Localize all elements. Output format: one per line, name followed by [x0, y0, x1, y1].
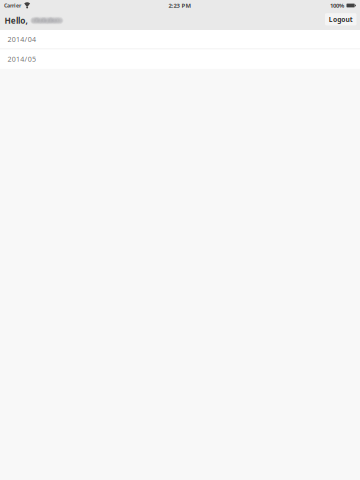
staticText: 2014/04 — [8, 34, 36, 44]
button[interactable]: 2014/05 — [0, 49, 360, 69]
button[interactable]: 2014/04 — [0, 30, 360, 49]
staticText: 2:23 PM — [168, 1, 191, 9]
staticText: Carrier — [4, 2, 21, 9]
staticText: 100% — [330, 1, 344, 9]
staticText: Logout — [329, 15, 353, 24]
button[interactable]: Logout — [325, 13, 356, 25]
staticText: Hello, — [4, 15, 27, 26]
staticText: 2014/05 — [8, 54, 36, 64]
